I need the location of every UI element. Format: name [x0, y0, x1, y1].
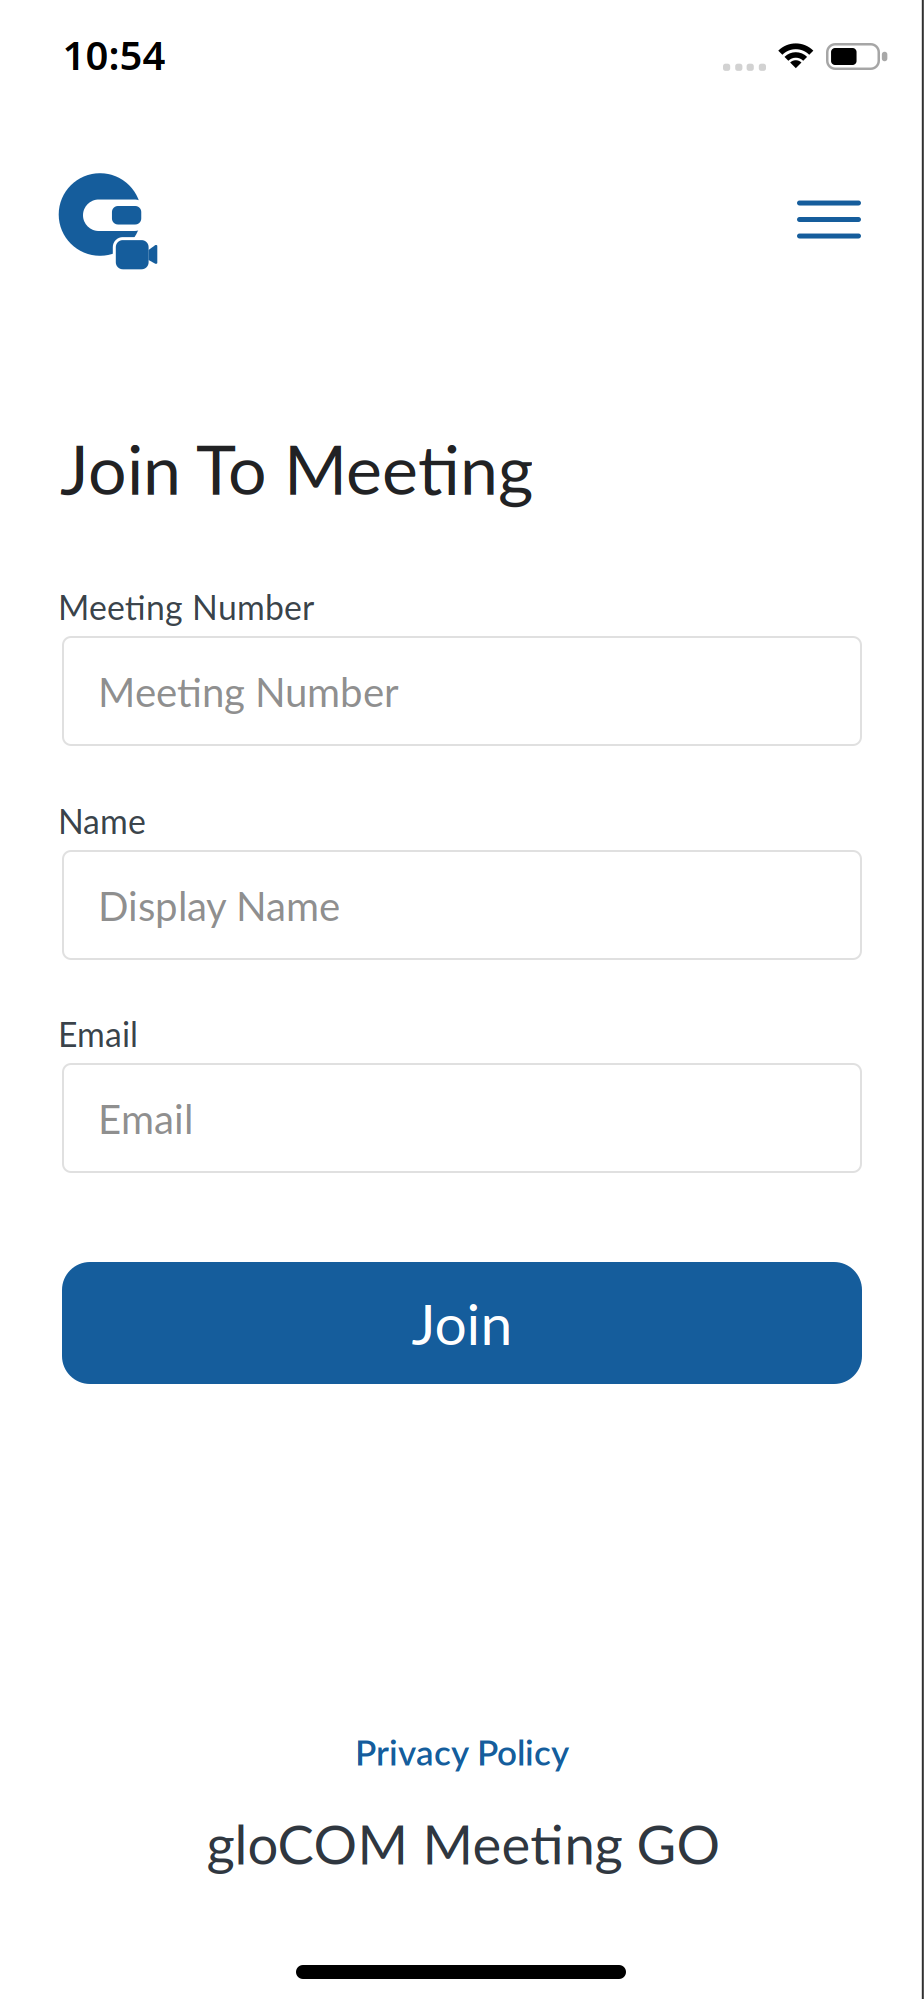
staticText: Name	[58, 801, 146, 841]
staticText: gloCOM Meeting GO	[206, 1811, 720, 1876]
button[interactable]: Privacy Policy	[341, 1723, 583, 1781]
button[interactable]: Join	[62, 1262, 862, 1384]
button[interactable]: Meeting Number	[62, 636, 862, 746]
staticText: Join	[411, 1289, 512, 1357]
staticText: Email	[58, 1014, 138, 1054]
staticText: Meeting Number	[98, 667, 399, 716]
button[interactable]: Menu	[783, 186, 875, 252]
staticText: Meeting Number	[58, 587, 314, 627]
staticText: 10:54	[62, 28, 165, 81]
button[interactable]: Display Name	[62, 850, 862, 960]
staticText: Display Name	[98, 881, 340, 930]
staticText: Privacy Policy	[355, 1731, 569, 1773]
staticText: Join To Meeting	[60, 428, 533, 509]
button[interactable]: Email	[62, 1063, 862, 1173]
staticText: Email	[98, 1094, 193, 1143]
